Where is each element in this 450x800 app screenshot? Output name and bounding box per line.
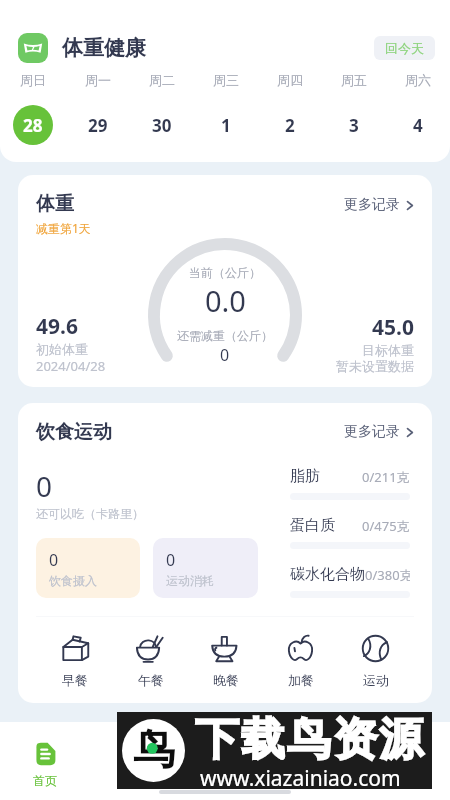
staticText: 下载鸟资源: [194, 712, 424, 767]
staticText: 饮食运动: [36, 420, 112, 444]
staticText: 鸟: [133, 724, 175, 777]
staticText: 28: [23, 114, 43, 137]
staticText: 饮食: [123, 773, 147, 788]
button[interactable]: 加餐: [263, 632, 338, 690]
button[interactable]: 午餐: [113, 632, 188, 690]
button[interactable]: 我的: [360, 739, 450, 790]
staticText: 0/475克: [362, 517, 410, 535]
staticText: 0/211克: [362, 468, 410, 486]
staticText: 体重: [36, 192, 74, 216]
staticText: 29: [88, 114, 108, 137]
button[interactable]: 1: [206, 105, 246, 145]
staticText: 45.0: [372, 313, 414, 342]
staticText: 蛋白质: [290, 516, 335, 535]
staticText: 49.6: [36, 312, 78, 341]
staticText: 饮食摄入: [49, 573, 97, 588]
staticText: 2: [285, 114, 295, 137]
staticText: 0/380克: [365, 566, 410, 584]
staticText: 碳水化合物: [290, 565, 365, 584]
button[interactable]: 更多记录: [342, 194, 417, 216]
button[interactable]: 30: [142, 105, 182, 145]
staticText: 当前（公斤）: [189, 265, 261, 280]
staticText: 周五: [341, 72, 367, 88]
staticText: 2024/04/28: [36, 357, 106, 375]
staticText: 周一: [85, 72, 111, 88]
button[interactable]: 2: [270, 105, 310, 145]
staticText: 还需减重（公斤）: [177, 328, 273, 343]
staticText: 我的: [393, 773, 417, 788]
button[interactable]: 4: [398, 105, 438, 145]
button[interactable]: 早餐: [37, 632, 113, 690]
button[interactable]: 28: [13, 105, 53, 145]
staticText: 记录: [303, 773, 327, 788]
button[interactable]: 0: [36, 538, 140, 598]
staticText: 回今天: [385, 40, 424, 56]
button[interactable]: 运动: [338, 632, 413, 690]
staticText: 体重健康: [62, 35, 146, 61]
staticText: 4: [413, 114, 423, 137]
button[interactable]: 更多记录: [342, 421, 417, 443]
staticText: 首页: [33, 773, 57, 788]
staticText: 早餐: [62, 672, 88, 688]
staticText: 30: [152, 114, 172, 137]
staticText: 0: [166, 549, 176, 571]
staticText: 周六: [405, 72, 431, 88]
staticText: 还可以吃（卡路里）: [36, 506, 144, 521]
button[interactable]: 回今天: [374, 36, 435, 60]
staticText: 周四: [277, 72, 303, 88]
button[interactable]: 29: [78, 105, 118, 145]
staticText: 0: [49, 549, 59, 571]
button[interactable]: 饮食: [90, 739, 180, 790]
button[interactable]: 首页: [0, 739, 90, 790]
staticText: 更多记录: [344, 423, 400, 441]
staticText: 周二: [149, 72, 175, 88]
staticText: 更多记录: [344, 196, 400, 214]
staticText: 目标体重: [362, 342, 414, 358]
staticText: 午餐: [138, 672, 164, 688]
staticText: 减重第1天: [36, 220, 91, 236]
staticText: 周日: [20, 72, 46, 88]
staticText: 晚餐: [213, 672, 239, 688]
button[interactable]: 0: [153, 538, 258, 598]
staticText: 0: [220, 344, 230, 366]
staticText: 0: [36, 467, 53, 505]
button[interactable]: 晚餐: [188, 632, 263, 690]
button[interactable]: 记录: [270, 739, 360, 790]
staticText: 1: [221, 114, 231, 137]
staticText: 脂肪: [290, 467, 320, 486]
staticText: 0.0: [205, 281, 246, 320]
staticText: 暂未设置数据: [336, 358, 414, 374]
staticText: www.xiazainiao.com: [200, 764, 401, 793]
staticText: 周三: [213, 72, 239, 88]
staticText: 运动: [363, 672, 389, 688]
staticText: 运动消耗: [166, 573, 214, 588]
staticText: 初始体重: [36, 341, 88, 357]
other: App icon: [18, 33, 48, 63]
staticText: 运动: [213, 773, 237, 788]
button[interactable]: 运动: [180, 739, 270, 790]
staticText: 3: [349, 114, 359, 137]
staticText: 加餐: [288, 672, 314, 688]
button[interactable]: 3: [334, 105, 374, 145]
